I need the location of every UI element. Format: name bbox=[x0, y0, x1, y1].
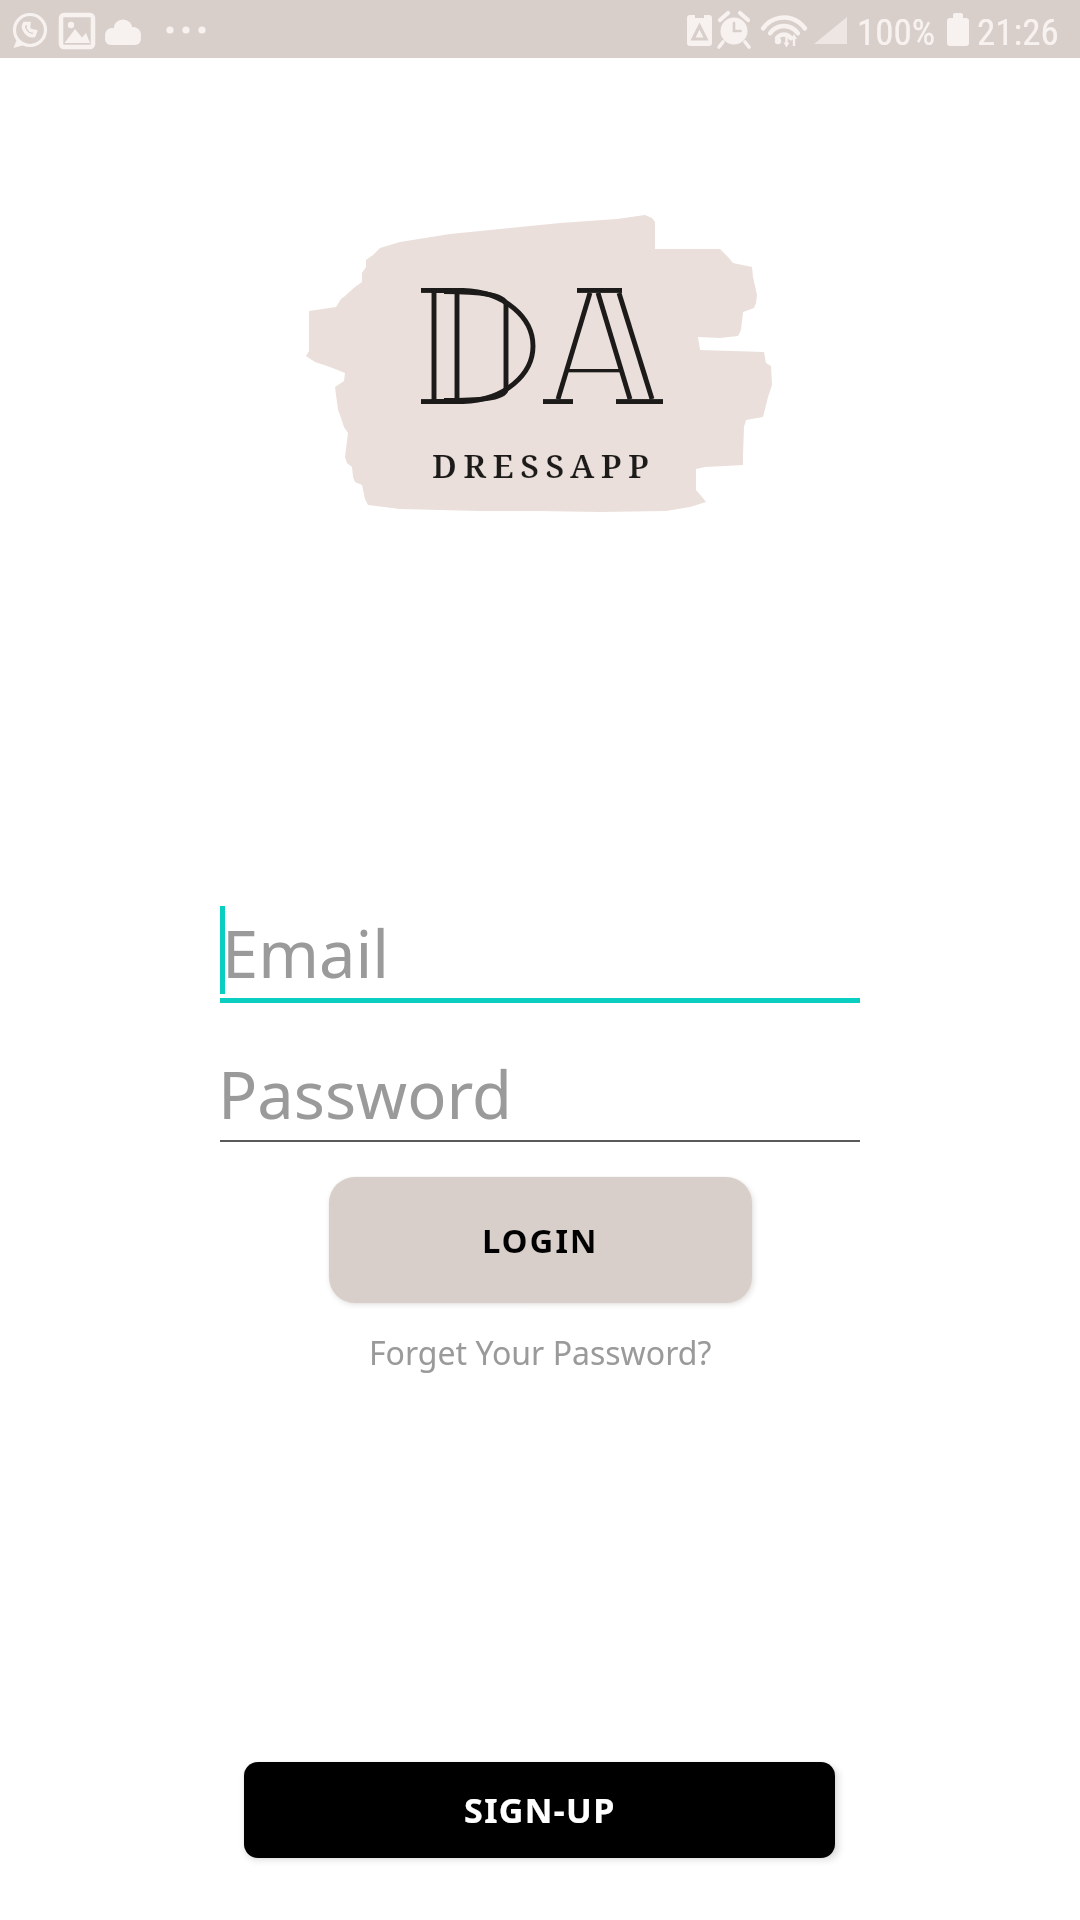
button[interactable]: Email bbox=[220, 896, 860, 1003]
button[interactable]: Forget Your Password? bbox=[350, 1325, 730, 1381]
staticText: LOGIN bbox=[482, 1218, 599, 1263]
button[interactable]: LOGIN bbox=[329, 1177, 752, 1303]
staticText: Password bbox=[218, 1050, 512, 1139]
staticText: Email bbox=[222, 909, 389, 998]
staticText: 100% bbox=[857, 11, 936, 54]
staticText: 21:26 bbox=[977, 11, 1059, 54]
staticText: Forget Your Password? bbox=[369, 1331, 712, 1375]
staticText: SIGN-UP bbox=[464, 1787, 616, 1833]
button[interactable]: Password bbox=[220, 1037, 860, 1142]
staticText: DRESSAPP bbox=[432, 443, 656, 488]
button[interactable]: SIGN-UP bbox=[244, 1762, 835, 1858]
